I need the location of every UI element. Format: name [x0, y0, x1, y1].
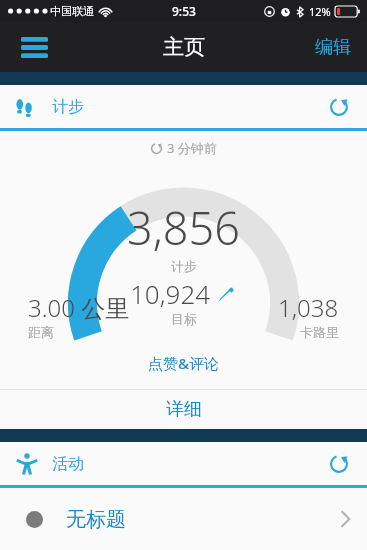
- button[interactable]: 1,038: [183, 291, 339, 340]
- button[interactable]: 计步: [0, 85, 367, 128]
- staticText: 9:53: [172, 3, 196, 19]
- staticText: 卡路里: [300, 324, 339, 340]
- staticText: 距离: [28, 324, 54, 340]
- button[interactable]: 点赞&评论: [140, 351, 228, 375]
- button[interactable]: Refresh 活动: [321, 446, 357, 482]
- staticText: 主页: [163, 34, 205, 60]
- button[interactable]: 编辑: [309, 30, 357, 65]
- staticText: 无标题: [66, 507, 126, 532]
- staticText: 1,038: [278, 291, 339, 324]
- staticText: 编辑: [315, 36, 351, 59]
- staticText: 活动: [52, 454, 84, 474]
- button[interactable]: 详细: [0, 389, 367, 429]
- staticText: 点赞&评论: [148, 353, 220, 373]
- staticText: 3 分钟前: [167, 139, 217, 157]
- button[interactable]: 无标题: [0, 488, 367, 550]
- staticText: 10,924: [130, 276, 211, 311]
- button[interactable]: 活动: [0, 442, 367, 485]
- staticText: 计步: [52, 97, 84, 117]
- staticText: 3,856: [127, 197, 240, 258]
- staticText: 3.00 公里: [28, 291, 130, 324]
- button[interactable]: Refresh 计步: [321, 89, 357, 125]
- staticText: 目标: [171, 311, 197, 327]
- staticText: 计步: [171, 258, 197, 274]
- button[interactable]: Menu: [12, 25, 56, 69]
- button[interactable]: Edit goal: [215, 283, 237, 305]
- staticText: 12%: [309, 4, 331, 19]
- staticText: 详细: [166, 398, 202, 421]
- staticText: 中国联通: [50, 4, 94, 18]
- button[interactable]: 3.00 公里: [28, 291, 183, 340]
